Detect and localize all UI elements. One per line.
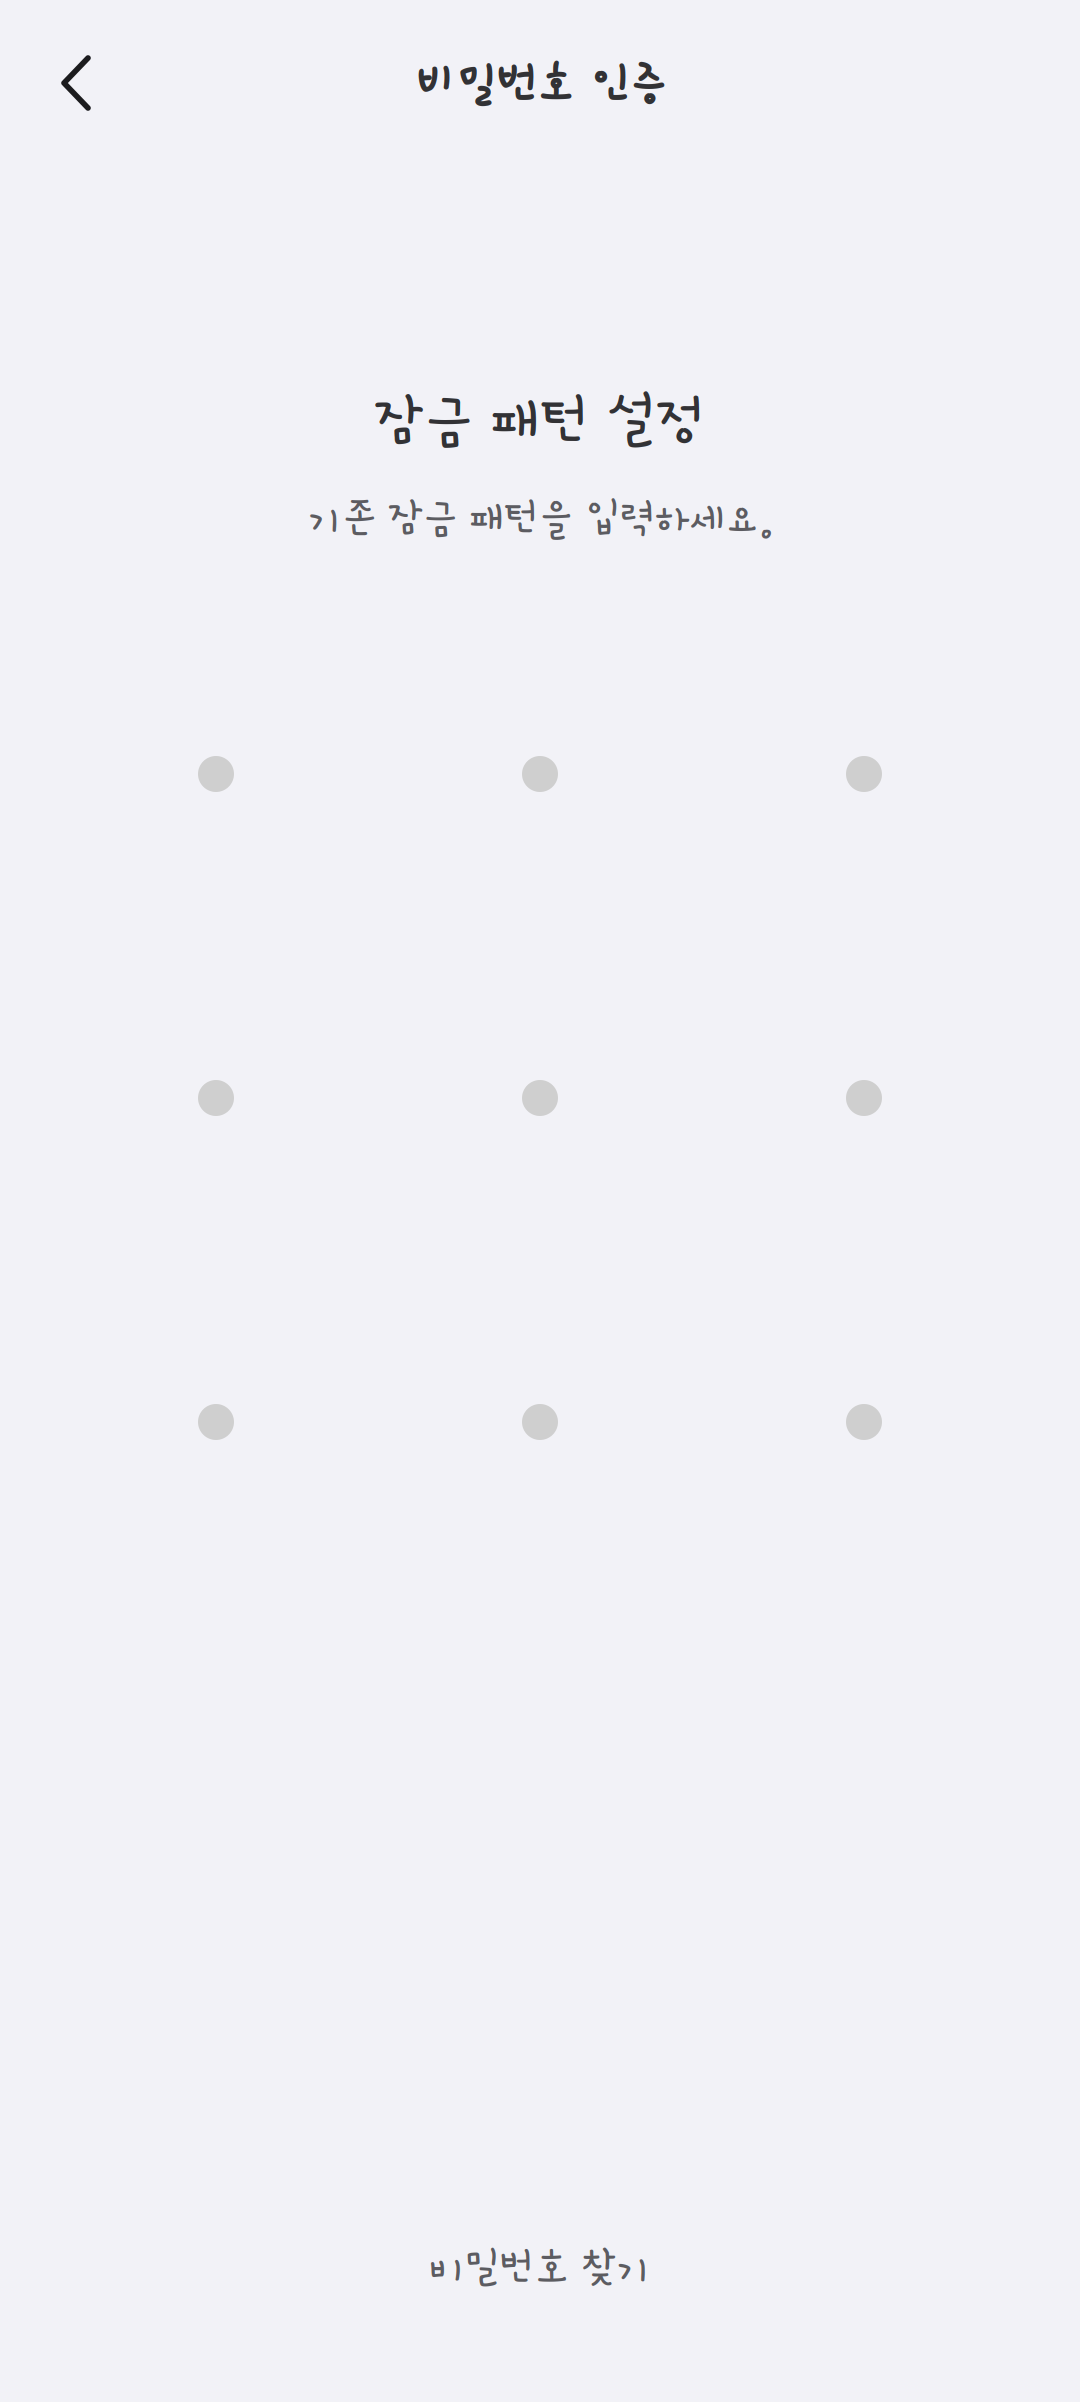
button[interactable]: 패턴 점 3	[846, 756, 882, 792]
button[interactable]: 패턴 점 1	[198, 756, 234, 792]
button[interactable]: 패턴 점 5	[522, 1080, 558, 1116]
button[interactable]: 비밀번호 찾기	[340, 2220, 740, 2316]
button[interactable]: 패턴 점 2	[522, 756, 558, 792]
staticText: 기존 잠금 패턴을 입력하세요。	[307, 497, 795, 541]
staticText: 잠금 패턴 설정	[374, 390, 706, 453]
button[interactable]: 패턴 점 7	[198, 1404, 234, 1440]
button[interactable]: 뒤로	[21, 28, 131, 138]
button[interactable]: 패턴 점 4	[198, 1080, 234, 1116]
button[interactable]: 패턴 점 6	[846, 1080, 882, 1116]
staticText: 비밀번호 인증	[415, 60, 668, 110]
button[interactable]: 패턴 점 9	[846, 1404, 882, 1440]
button[interactable]: 패턴 점 8	[522, 1404, 558, 1440]
staticText: 비밀번호 찾기	[429, 2246, 650, 2290]
